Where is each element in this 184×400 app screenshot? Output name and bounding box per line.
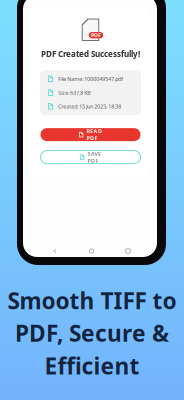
button[interactable]: Home [79,244,103,258]
button[interactable]: Back [43,244,67,258]
staticText: File Name: 1000049547.pdf [58,75,123,82]
button[interactable]: Recent apps [116,244,140,258]
staticText: Created: 15 Jun 2025, 18:38 [58,103,121,110]
staticText: PDF, Secure & [15,318,169,348]
staticText: Size: 637.8 KB [58,89,90,96]
button[interactable]: SAVE PDF [40,151,140,164]
staticText: PDF Created Successfully! [41,48,140,59]
staticText: SAVE PDF [87,150,101,164]
staticText: Smooth TIFF to [7,285,176,315]
staticText: PDF [91,32,101,39]
staticText: Efficient [44,351,139,381]
button[interactable]: READ PDF [40,128,140,141]
staticText: READ PDF [86,127,102,142]
